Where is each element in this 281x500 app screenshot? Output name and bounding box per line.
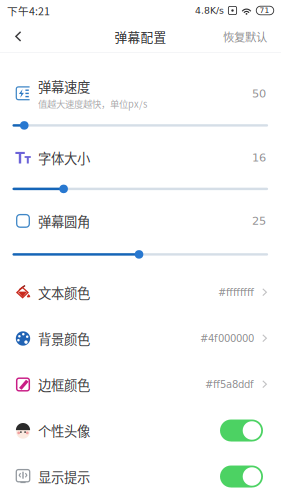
staticText: 71 xyxy=(259,6,269,15)
button[interactable]: 背景颜色 xyxy=(0,315,281,361)
staticText: 字体大小 xyxy=(38,148,90,167)
staticText: 显示提示 xyxy=(38,467,90,486)
button[interactable]: 恢复默认 xyxy=(209,21,281,52)
button[interactable]: Back xyxy=(0,21,36,52)
button[interactable]: 字体大小 xyxy=(0,145,281,193)
button[interactable]: 弹幕速度 xyxy=(0,80,281,130)
staticText: 弹幕配置 xyxy=(114,27,166,46)
staticText: 下午4:21 xyxy=(7,3,50,18)
staticText: 4.8K/s xyxy=(195,5,224,16)
staticText: 恢复默认 xyxy=(223,28,267,45)
staticText: 16 xyxy=(252,151,266,164)
staticText: 背景颜色 xyxy=(38,329,90,348)
staticText: #ff5a8ddf xyxy=(205,379,254,390)
staticText: 25 xyxy=(252,214,266,227)
staticText: 50 xyxy=(252,87,266,100)
staticText: 边框颜色 xyxy=(38,375,90,394)
staticText: 弹幕圆角 xyxy=(38,211,90,230)
staticText: #ffffffff xyxy=(218,287,254,298)
button[interactable]: 弹幕圆角 xyxy=(0,208,281,259)
button[interactable]: 个性头像 xyxy=(0,407,281,453)
staticText: 文本颜色 xyxy=(38,283,90,302)
staticText: 值越大速度越快，单位px/s xyxy=(38,97,147,110)
staticText: 个性头像 xyxy=(38,421,90,440)
staticText: #4f000000 xyxy=(200,333,254,344)
button[interactable]: 显示提示 xyxy=(0,453,281,499)
staticText: 弹幕速度 xyxy=(38,77,90,96)
button[interactable]: 文本颜色 xyxy=(0,269,281,315)
button[interactable]: 边框颜色 xyxy=(0,361,281,407)
